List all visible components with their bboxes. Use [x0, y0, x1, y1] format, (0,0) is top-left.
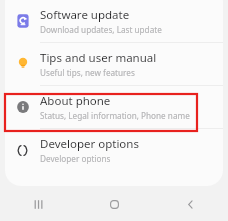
staticText: Tips and user manual [40, 50, 157, 66]
staticText: Status, Legal information, Phone name [40, 110, 190, 121]
staticText: Developer options [40, 136, 139, 152]
button[interactable]: Back [152, 187, 228, 221]
button[interactable]: Tips and user manual [5, 43, 223, 85]
staticText: About phone [40, 93, 111, 109]
staticText: Software update [40, 7, 130, 23]
button[interactable]: About phone [5, 86, 223, 128]
staticText: Download updates, Last update [40, 24, 162, 35]
button[interactable]: Home [76, 187, 152, 221]
button[interactable]: Software update [5, 0, 223, 42]
button[interactable]: Developer options [5, 129, 223, 171]
staticText: Developer options [40, 153, 111, 164]
staticText: Useful tips, new features [40, 67, 135, 78]
button[interactable]: Recents [0, 187, 76, 221]
